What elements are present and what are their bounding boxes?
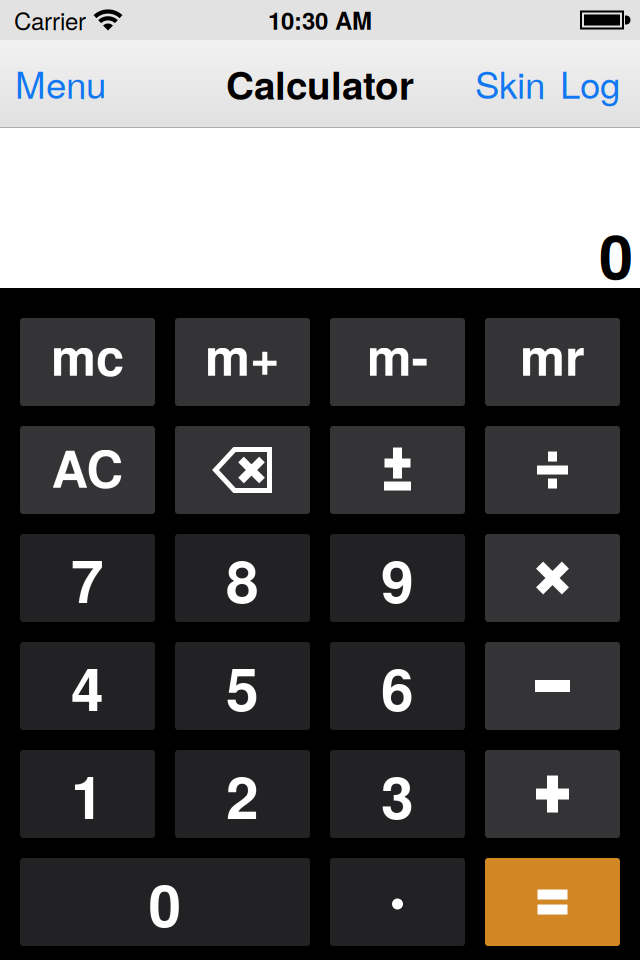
staticText: 2 — [226, 753, 259, 837]
staticText: m+ — [205, 319, 280, 391]
staticText: AC — [51, 431, 123, 503]
staticText: Carrier — [14, 3, 86, 37]
button[interactable]: 5 — [175, 642, 310, 730]
staticText: Calculator — [226, 56, 414, 112]
button[interactable]: 3 — [330, 750, 465, 838]
button[interactable]: Divide — [485, 426, 620, 514]
staticText: 5 — [226, 645, 259, 729]
staticText: m- — [366, 319, 428, 391]
button[interactable]: mr — [485, 318, 620, 406]
button[interactable]: 7 — [20, 534, 155, 622]
button[interactable]: 9 — [330, 534, 465, 622]
staticText: 6 — [381, 645, 414, 729]
button[interactable]: Delete — [175, 426, 310, 514]
button[interactable]: Equals — [485, 858, 620, 946]
button[interactable]: Plus — [485, 750, 620, 838]
staticText: mr — [520, 319, 585, 391]
button[interactable]: Decimal point — [330, 858, 465, 946]
staticText: 0 — [148, 861, 181, 945]
staticText: Log — [560, 57, 620, 109]
button[interactable]: AC — [20, 426, 155, 514]
staticText: 8 — [226, 537, 259, 621]
button[interactable]: Multiply — [485, 534, 620, 622]
button[interactable]: Log — [560, 57, 620, 109]
button[interactable]: 4 — [20, 642, 155, 730]
staticText: 7 — [71, 537, 104, 621]
button[interactable]: Minus — [485, 642, 620, 730]
staticText: 3 — [381, 753, 414, 837]
staticText: Menu — [15, 57, 106, 109]
staticText: 10:30 AM — [268, 3, 372, 37]
staticText: mc — [51, 319, 124, 391]
button[interactable]: mc — [20, 318, 155, 406]
staticText: 1 — [71, 753, 104, 837]
button[interactable]: 2 — [175, 750, 310, 838]
button[interactable]: Menu — [15, 57, 106, 109]
button[interactable]: m- — [330, 318, 465, 406]
button[interactable]: 6 — [330, 642, 465, 730]
staticText: 9 — [381, 537, 414, 621]
button[interactable]: m+ — [175, 318, 310, 406]
staticText: 4 — [71, 645, 104, 729]
button[interactable]: Plus Minus — [330, 426, 465, 514]
staticText: 0 — [599, 210, 633, 298]
button[interactable]: Skin — [475, 57, 545, 109]
button[interactable]: 0 — [20, 858, 310, 946]
button[interactable]: 1 — [20, 750, 155, 838]
staticText: Skin — [475, 57, 545, 109]
button[interactable]: 8 — [175, 534, 310, 622]
